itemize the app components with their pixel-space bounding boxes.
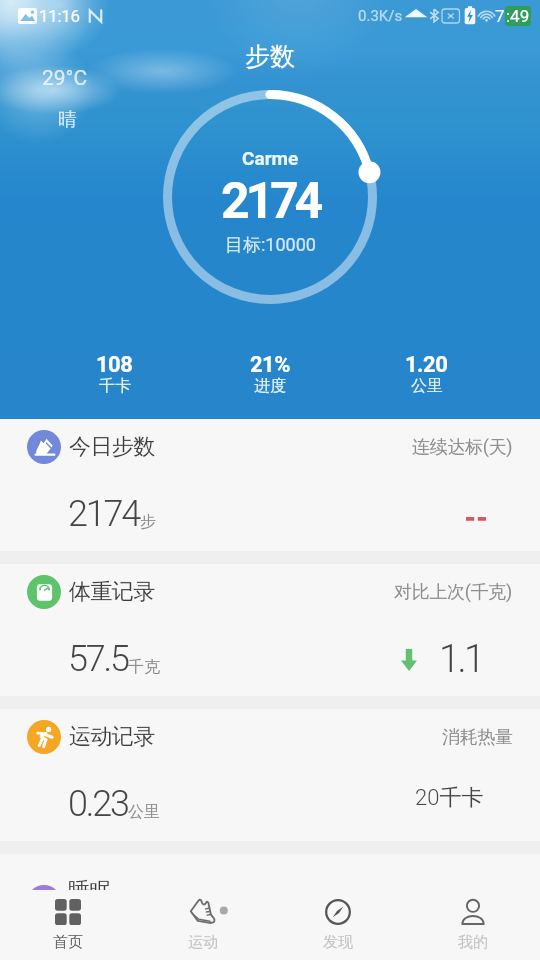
staticText: 2174 bbox=[221, 172, 319, 231]
staticText: 进度 bbox=[254, 376, 286, 396]
staticText: 1.20 bbox=[405, 352, 448, 378]
staticText: Carme bbox=[242, 147, 299, 169]
staticText: 目标:10000 bbox=[225, 234, 316, 257]
staticText: 2174 bbox=[68, 493, 140, 535]
staticText: 睡眠 bbox=[68, 877, 111, 905]
staticText: 消耗热量 bbox=[442, 726, 513, 749]
staticText: 57.5 bbox=[68, 638, 128, 680]
staticText: 0.3K/s bbox=[358, 7, 403, 25]
staticText: 体重记录 bbox=[69, 578, 155, 606]
staticText: 21% bbox=[250, 352, 290, 378]
staticText: 今日步数 bbox=[69, 433, 155, 461]
staticText: :49 bbox=[506, 6, 530, 26]
staticText: 首页 bbox=[53, 933, 83, 952]
staticText: 20千卡 bbox=[415, 784, 484, 812]
staticText: 千克 bbox=[128, 657, 160, 677]
button[interactable]: 睡眠 bbox=[0, 854, 540, 890]
staticText: 对比上次(千克) bbox=[394, 581, 513, 604]
staticText: 公里 bbox=[128, 802, 160, 822]
staticText: 步 bbox=[140, 512, 156, 532]
button[interactable]: 首页 bbox=[0, 890, 135, 960]
button[interactable]: 体重记录 bbox=[0, 564, 540, 696]
staticText: 108 bbox=[96, 352, 133, 378]
staticText: 运动记录 bbox=[69, 723, 155, 751]
staticText: 步数 bbox=[245, 41, 295, 72]
staticText: 千卡 bbox=[99, 376, 131, 396]
staticText: 11:16 bbox=[39, 6, 80, 26]
staticText: 7 bbox=[495, 6, 505, 26]
staticText: 连续达标(天) bbox=[412, 436, 513, 459]
staticText: 公里 bbox=[411, 376, 443, 396]
button[interactable]: 运动记录 bbox=[0, 709, 540, 841]
button[interactable]: 我的 bbox=[405, 890, 540, 960]
staticText: 29°C bbox=[42, 66, 88, 91]
staticText: 1.1 bbox=[439, 637, 483, 682]
button[interactable]: 运动 bbox=[135, 890, 270, 960]
staticText: 晴 bbox=[58, 108, 77, 132]
staticText: 我的 bbox=[458, 933, 488, 952]
staticText: 发现 bbox=[323, 933, 353, 952]
button[interactable]: 今日步数 bbox=[0, 419, 540, 551]
staticText: 0.23 bbox=[68, 783, 128, 825]
staticText: 运动 bbox=[188, 933, 218, 952]
button[interactable]: 发现 bbox=[270, 890, 405, 960]
